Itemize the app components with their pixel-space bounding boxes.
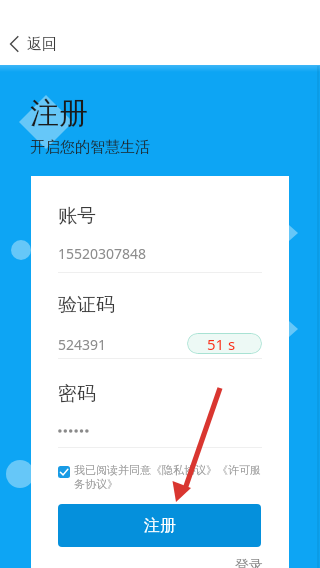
staticText: 注册 xyxy=(144,516,176,536)
button[interactable]: Back xyxy=(0,28,75,60)
staticText: 51 s xyxy=(207,334,236,354)
staticText: 账号 xyxy=(58,204,96,228)
staticText: 15520307848 xyxy=(58,244,147,263)
button[interactable]: 注册 xyxy=(58,504,261,547)
button[interactable]: 登录 xyxy=(235,557,263,568)
staticText: 密码 xyxy=(58,382,96,406)
staticText: 验证码 xyxy=(58,293,115,317)
staticText: 524391 xyxy=(58,335,107,354)
staticText: 开启您的智慧生活 xyxy=(30,138,150,157)
button[interactable]: 我已阅读并同意《隐私协议》《许可服务协议》 xyxy=(58,463,262,491)
other: Back xyxy=(10,36,19,52)
button[interactable]: 51 s xyxy=(187,333,262,354)
staticText: 我已阅读并同意《隐私协议》《许可服务协议》 xyxy=(74,463,262,491)
staticText: 返回 xyxy=(27,35,57,54)
staticText: 注册 xyxy=(30,95,88,132)
